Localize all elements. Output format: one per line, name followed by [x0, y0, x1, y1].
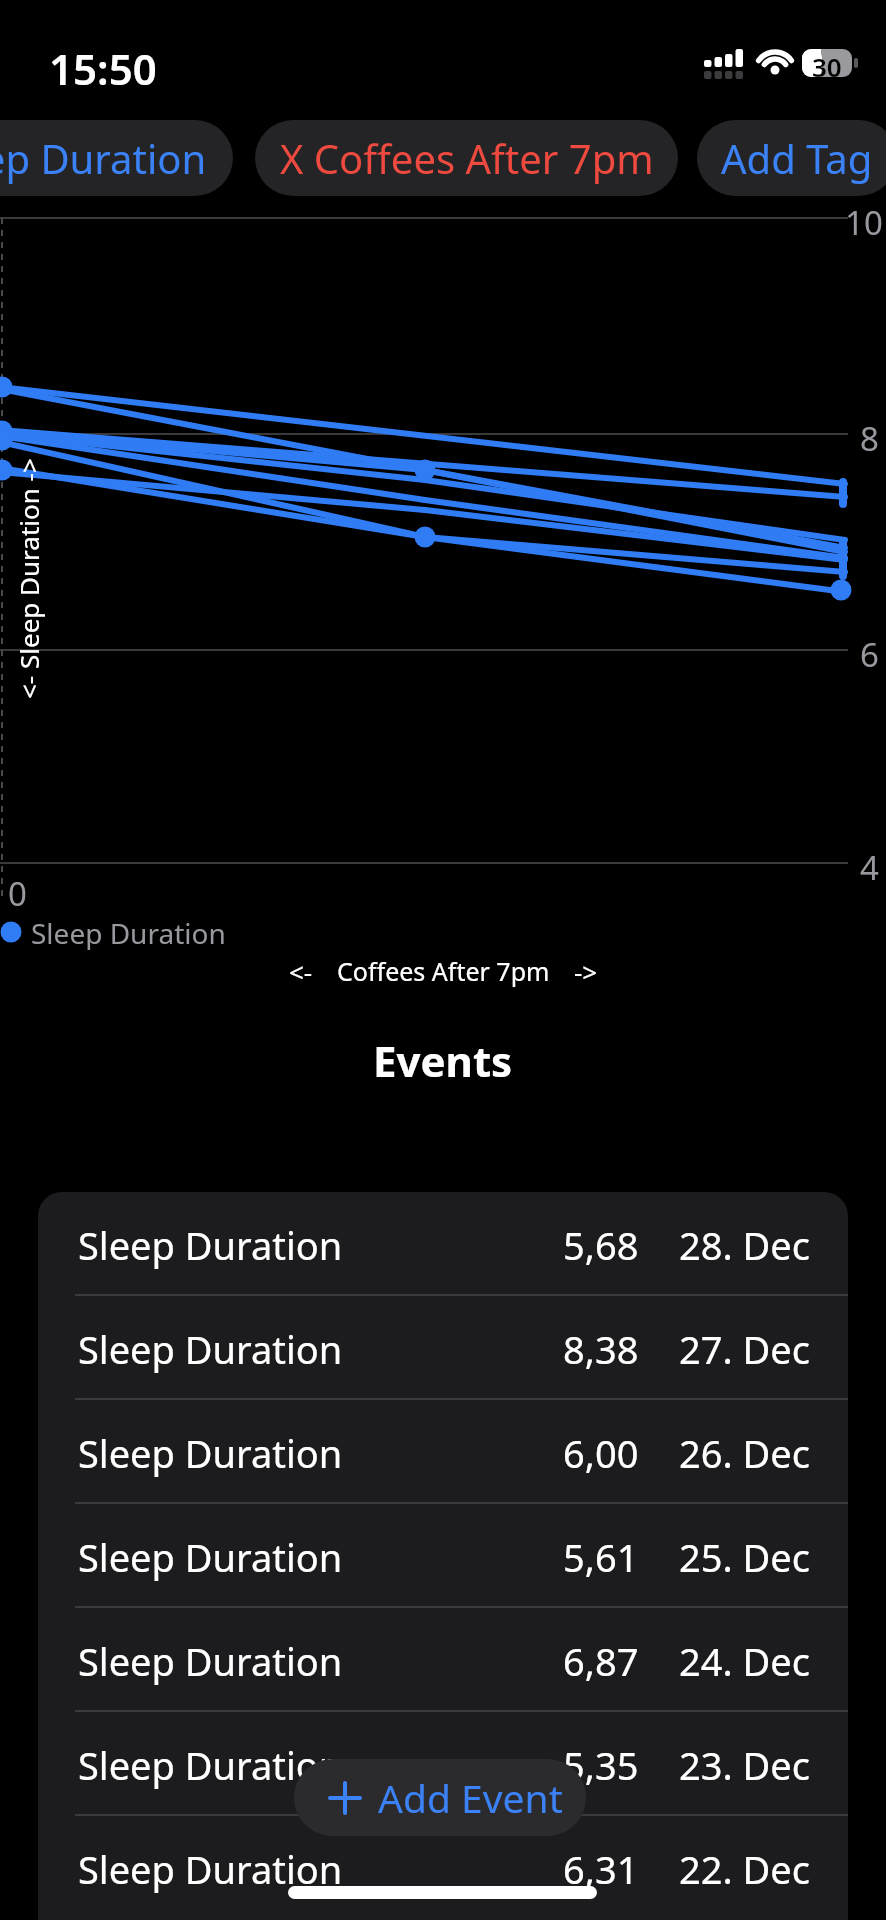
- button[interactable]: Sleep Duration: [38, 1400, 848, 1504]
- staticText: Sleep Duration: [78, 1843, 343, 1895]
- staticText: 25. Dec: [679, 1531, 810, 1583]
- staticText: 5,61: [563, 1531, 639, 1583]
- staticText: Sleep Duration: [78, 1427, 343, 1479]
- staticText: 5,68: [563, 1219, 639, 1271]
- staticText: Sleep Duration: [78, 1739, 343, 1791]
- button[interactable]: Sleep Duration: [0, 120, 233, 196]
- staticText: 0: [8, 871, 27, 907]
- staticText: 8: [860, 416, 879, 452]
- staticText: 26. Dec: [679, 1427, 810, 1479]
- staticText: 6,31: [563, 1843, 639, 1895]
- staticText: Add Event: [378, 1771, 563, 1824]
- staticText: ->: [574, 954, 598, 989]
- button[interactable]: Add Tag: [697, 120, 886, 196]
- staticText: 6: [860, 632, 879, 668]
- staticText: <-: [289, 954, 313, 989]
- button[interactable]: Sleep Duration: [38, 1712, 848, 1816]
- button[interactable]: Add Event: [294, 1759, 586, 1836]
- staticText: 6,87: [563, 1635, 639, 1687]
- staticText: 15:50: [49, 40, 157, 88]
- staticText: Events: [373, 1032, 513, 1084]
- staticText: 27. Dec: [679, 1323, 810, 1375]
- staticText: 24. Dec: [679, 1635, 810, 1687]
- staticText: 10: [845, 200, 883, 236]
- staticText: Coffees After 7pm: [337, 954, 550, 988]
- button[interactable]: Sleep Duration: [38, 1192, 848, 1296]
- staticText: Sleep Duration: [0, 131, 207, 185]
- button[interactable]: Sleep Duration: [38, 1504, 848, 1608]
- button[interactable]: Sleep Duration: [38, 1608, 848, 1712]
- button[interactable]: Sleep Duration: [38, 1296, 848, 1400]
- staticText: Sleep Duration: [31, 914, 226, 950]
- staticText: Add Tag: [721, 131, 873, 185]
- staticText: 5,35: [563, 1739, 639, 1791]
- staticText: 22. Dec: [679, 1843, 810, 1895]
- button[interactable]: X Coffees After 7pm: [255, 120, 678, 196]
- staticText: Sleep Duration: [78, 1219, 343, 1271]
- staticText: 4: [860, 845, 879, 881]
- staticText: 28. Dec: [679, 1219, 810, 1271]
- staticText: Sleep Duration: [78, 1635, 343, 1687]
- button[interactable]: Sleep Duration: [38, 1816, 848, 1920]
- staticText: X Coffees After 7pm: [280, 131, 654, 185]
- staticText: Sleep Duration: [78, 1531, 343, 1583]
- staticText: 23. Dec: [679, 1739, 810, 1791]
- staticText: 30: [812, 49, 842, 77]
- staticText: 8,38: [563, 1323, 639, 1375]
- staticText: 6,00: [563, 1427, 639, 1479]
- staticText: Sleep Duration: [78, 1323, 343, 1375]
- staticText: <- Sleep Duration ->: [11, 458, 46, 699]
